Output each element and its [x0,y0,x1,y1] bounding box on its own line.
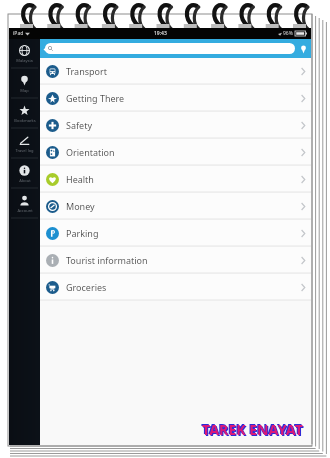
button[interactable]: Health [40,166,311,192]
staticText: Money [66,200,95,212]
staticText: Parking [66,227,99,239]
staticText: TAREK ENAYAT [203,421,304,440]
staticText: TAREK ENAYAT [201,419,302,438]
staticText: Bookmarks [14,118,36,123]
button[interactable]: Account [9,189,40,218]
staticText: Transport [66,65,107,77]
button[interactable]: Bookmarks [9,99,40,128]
button[interactable]: About [9,159,40,188]
staticText: Malaysia [16,58,33,63]
button[interactable]: Map [9,69,40,98]
staticText: Safety [66,119,93,131]
staticText: Health [66,173,94,185]
button[interactable]: Money [40,193,311,219]
staticText: TAREK ENAYAT [202,420,303,439]
staticText: 96% [283,30,293,37]
staticText: Account [17,208,33,213]
staticText: 19:43 [154,30,167,37]
button[interactable]: Orientation [40,139,311,165]
button[interactable]: Getting There [40,85,311,111]
button[interactable]: Back [40,42,54,56]
staticText: Groceries [66,281,107,293]
staticText: Tourist information [66,254,148,266]
staticText: Orientation [66,146,115,158]
staticText: Travel log [15,148,34,153]
staticText: iPad [13,30,24,37]
button[interactable]: Malaysia [9,39,40,68]
button[interactable]: Tourist information [40,247,311,273]
staticText: Map [20,88,29,93]
button[interactable]: Location [295,41,311,57]
staticText: About [19,178,31,183]
button[interactable]: Groceries [40,274,311,300]
button[interactable] [45,43,295,54]
button[interactable]: Travel log [9,129,40,158]
button[interactable]: Safety [40,112,311,138]
staticText: Getting There [66,92,125,104]
button[interactable]: Transport [40,58,311,84]
button[interactable]: Parking [40,220,311,246]
